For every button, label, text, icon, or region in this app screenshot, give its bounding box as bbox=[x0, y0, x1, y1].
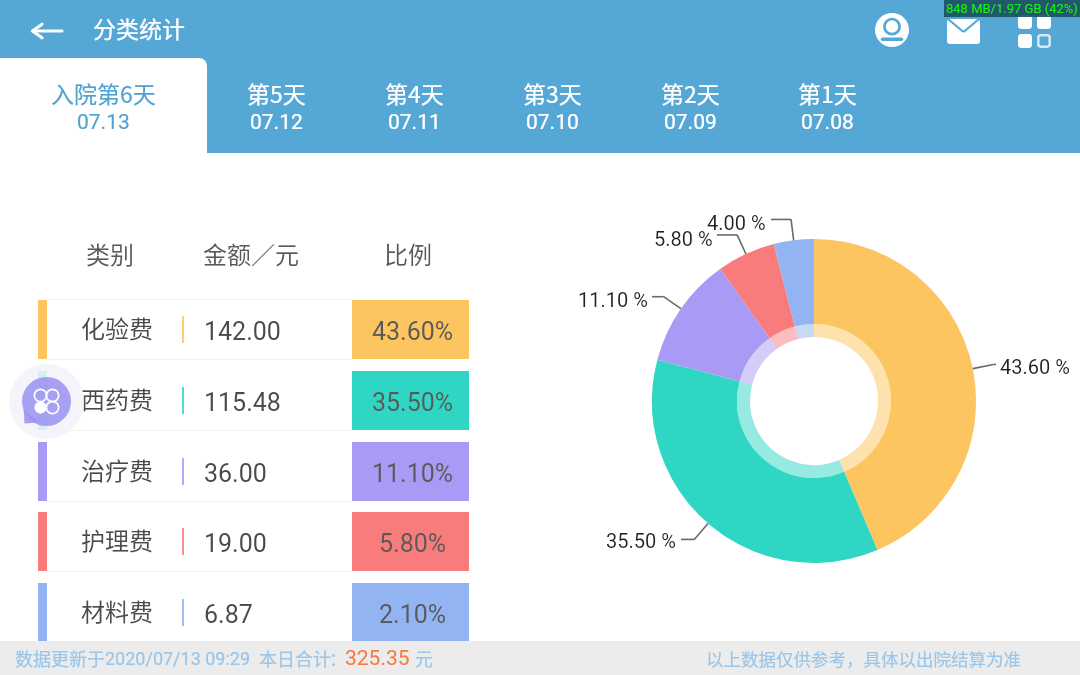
staticText: 07.13 bbox=[77, 110, 130, 135]
staticText: 5.80% bbox=[379, 529, 447, 558]
button[interactable]: 化验费 bbox=[0, 294, 500, 365]
staticText: 35.50 % bbox=[606, 529, 676, 552]
staticText: 本日合计 bbox=[251, 645, 332, 671]
staticText: 07.11 bbox=[388, 110, 441, 135]
staticText: 西药费 bbox=[81, 381, 153, 416]
staticText: 43.60 % bbox=[1000, 355, 1070, 378]
staticText: 5.80 % bbox=[654, 227, 713, 250]
staticText: 材料费 bbox=[81, 593, 153, 628]
button[interactable]: Account bbox=[868, 6, 916, 54]
staticText: 金额／元 bbox=[203, 236, 299, 271]
button[interactable]: 第3天 bbox=[483, 58, 621, 153]
staticText: 07.09 bbox=[664, 110, 717, 135]
staticText: 治疗费 bbox=[81, 452, 153, 487]
staticText: 36.00 bbox=[204, 459, 267, 488]
staticText: ： bbox=[329, 645, 347, 671]
staticText: 848 MB/1.97 GB (42%) bbox=[946, 1, 1078, 16]
staticText: 化验费 bbox=[81, 310, 153, 345]
staticText: 43.60% bbox=[372, 317, 454, 346]
staticText: 35.50% bbox=[372, 388, 454, 417]
button[interactable]: Assistant bbox=[9, 364, 84, 439]
staticText: 11.10 % bbox=[578, 288, 648, 311]
staticText: 数据更新于 bbox=[15, 645, 105, 671]
staticText: 115.48 bbox=[204, 388, 281, 417]
staticText: 第5天 bbox=[247, 76, 306, 109]
staticText: 4.00 % bbox=[707, 211, 766, 234]
staticText: 第2天 bbox=[661, 76, 720, 109]
button[interactable]: 材料费 bbox=[0, 577, 500, 648]
button[interactable]: 第1天 bbox=[758, 58, 896, 153]
button[interactable]: 治疗费 bbox=[0, 436, 500, 507]
button[interactable]: 护理费 bbox=[0, 506, 500, 577]
button[interactable]: 第2天 bbox=[621, 58, 759, 153]
staticText: 护理费 bbox=[81, 522, 153, 557]
staticText: 以上数据仅供参考，具体以出院结算为准 bbox=[706, 646, 1021, 671]
staticText: 2020/07/13 09:29 bbox=[105, 648, 251, 669]
staticText: 11.10% bbox=[372, 459, 454, 488]
staticText: 07.10 bbox=[526, 110, 579, 135]
staticText: 325.35 bbox=[345, 646, 410, 671]
staticText: 第1天 bbox=[798, 76, 857, 109]
button[interactable]: Messages bbox=[939, 7, 988, 56]
staticText: 类别 bbox=[86, 236, 134, 271]
staticText: 2.10% bbox=[379, 600, 447, 629]
staticText: 07.08 bbox=[801, 110, 854, 135]
staticText: 142.00 bbox=[204, 317, 281, 346]
button[interactable]: Back bbox=[22, 10, 64, 52]
staticText: 19.00 bbox=[204, 529, 267, 558]
button[interactable]: 入院第6天 bbox=[0, 58, 207, 153]
staticText: 第3天 bbox=[523, 76, 582, 109]
button[interactable]: 西药费 bbox=[0, 365, 500, 436]
staticText: 07.12 bbox=[250, 110, 303, 135]
button[interactable]: 第5天 bbox=[207, 58, 345, 153]
staticText: 6.87 bbox=[204, 600, 253, 629]
staticText: 入院第6天 bbox=[51, 76, 156, 109]
button[interactable]: 第4天 bbox=[345, 58, 483, 153]
staticText: 比例 bbox=[384, 236, 432, 271]
staticText: 第4天 bbox=[385, 76, 444, 109]
staticText: 分类统计 bbox=[93, 11, 185, 44]
staticText: 元 bbox=[411, 645, 434, 671]
button[interactable]: Apps bbox=[1010, 7, 1059, 56]
